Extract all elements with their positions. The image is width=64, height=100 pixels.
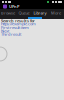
staticText: Queue <box>18 10 29 16</box>
staticText: Browse <box>1 10 15 16</box>
staticText: Third result <box>1 32 21 37</box>
staticText: UPnP <box>9 4 19 9</box>
staticText: Next <box>1 28 9 33</box>
button[interactable]: Library <box>32 9 48 17</box>
button[interactable]: Browse <box>0 9 16 17</box>
staticText: First result item <box>1 25 29 30</box>
staticText: https://example.com <box>1 21 36 26</box>
staticText: Library <box>33 10 46 16</box>
button[interactable]: More <box>48 9 64 17</box>
staticText: More <box>51 10 61 16</box>
button[interactable]: Queue <box>16 9 32 17</box>
staticText: Search results for <box>1 18 35 23</box>
